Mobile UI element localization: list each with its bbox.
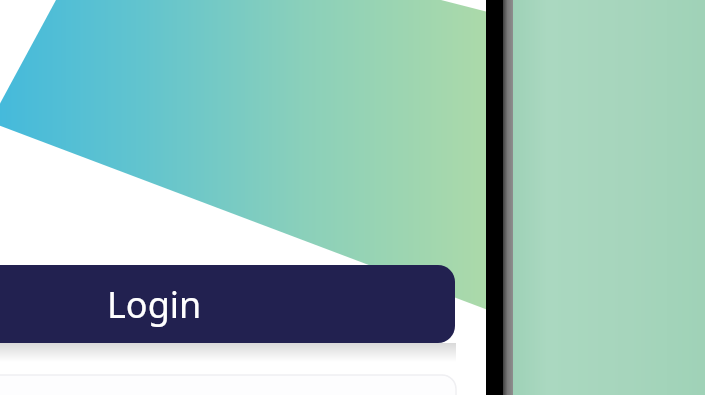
staticText: Login xyxy=(107,280,202,329)
button[interactable]: Login xyxy=(0,265,455,343)
